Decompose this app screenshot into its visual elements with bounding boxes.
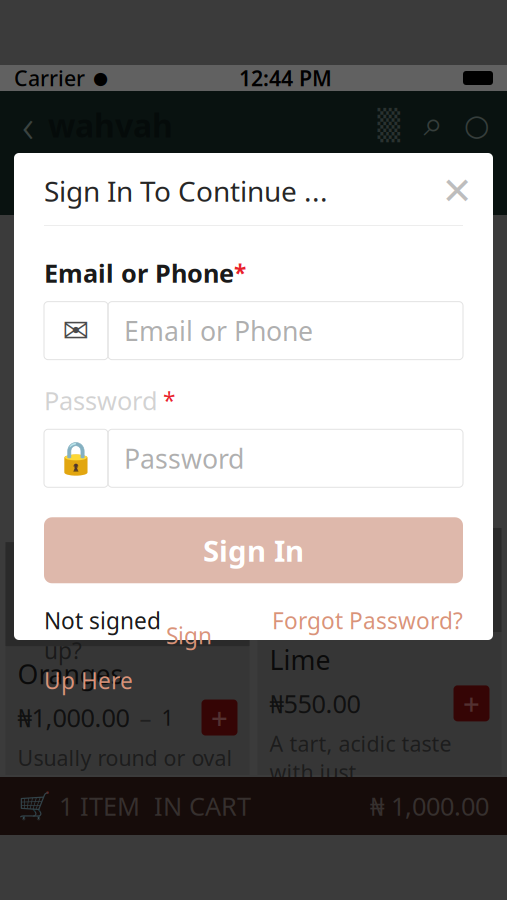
staticText: Not signed up? [44, 605, 161, 665]
staticText: Sign In To Continue ... [44, 172, 328, 210]
staticText: ‹ [22, 95, 34, 155]
staticText: Forgot Password? [272, 605, 463, 635]
staticText: 12:44 PM [239, 64, 332, 92]
button[interactable]: Forgot Password? [272, 605, 463, 635]
staticText: 🛒 [18, 791, 51, 821]
button[interactable]: Close [435, 169, 479, 213]
button[interactable]: Lime [257, 547, 501, 775]
staticText: A tart, acidic taste with just [269, 729, 451, 786]
button[interactable]: Home Delivery [14, 167, 164, 207]
staticText: ₦1,000.00 [17, 701, 129, 734]
staticText: Usually round or oval [17, 743, 232, 772]
button[interactable]: Sign In [44, 517, 463, 583]
staticText: Home Delivery [26, 157, 114, 217]
staticText: ₦550.00 [269, 687, 360, 720]
staticText: ○ [464, 108, 490, 142]
staticText: Sign In [203, 531, 304, 570]
staticText: ● [93, 68, 108, 88]
staticText: * [163, 385, 175, 415]
staticText: Email or Phone [124, 313, 313, 348]
staticText: 1 [161, 703, 173, 732]
staticText: ✉ [62, 312, 89, 349]
staticText: + [211, 698, 228, 737]
staticText: ▾ [122, 177, 131, 197]
staticText: ✕ [441, 170, 472, 212]
staticText: * [234, 258, 246, 288]
staticText: 1 ITEM IN CART [59, 789, 251, 823]
staticText: Sign [166, 620, 212, 650]
staticText: Up Here [44, 665, 133, 696]
staticText: ▒ [377, 108, 400, 142]
button[interactable]: Account [455, 103, 499, 147]
staticText: Oranges [17, 656, 123, 691]
button[interactable]: Scan QR code [367, 103, 411, 147]
staticText: Password [124, 441, 244, 476]
button[interactable]: Use current location [449, 167, 493, 207]
button[interactable]: Not signed up? [44, 605, 244, 696]
staticText: Email or Phone [44, 256, 234, 290]
staticText: – [139, 702, 151, 733]
staticText: + [463, 684, 480, 723]
staticText: ◉ [459, 172, 482, 202]
staticText: ₦ 1,000.00 [370, 789, 489, 823]
button[interactable]: Back [8, 103, 48, 147]
button[interactable]: Oranges [5, 547, 249, 775]
staticText: Lime [269, 642, 330, 677]
button[interactable]: Search [411, 103, 455, 147]
staticText: Password [44, 384, 158, 417]
button[interactable]: 🛒 [0, 777, 507, 835]
staticText: Carrier [14, 64, 85, 92]
staticText: 🔒 [56, 440, 96, 477]
staticText: Chandigarh, India [190, 172, 382, 202]
staticText: ⌕ [423, 108, 442, 142]
